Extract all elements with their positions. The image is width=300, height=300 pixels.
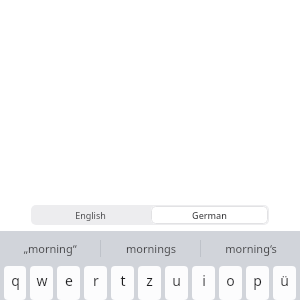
staticText: German <box>192 209 227 221</box>
button[interactable]: e <box>57 266 80 300</box>
staticText: ü <box>280 271 289 290</box>
staticText: o <box>226 271 235 290</box>
button[interactable]: w <box>30 266 53 300</box>
button[interactable]: mornings <box>101 231 200 266</box>
staticText: English <box>75 209 106 221</box>
staticText: i <box>202 271 206 290</box>
staticText: p <box>253 271 262 290</box>
button[interactable]: morning‘s <box>201 231 300 266</box>
button[interactable]: u <box>165 266 188 300</box>
button[interactable]: p <box>246 266 269 300</box>
staticText: t <box>120 271 126 290</box>
button[interactable]: English <box>31 205 150 225</box>
staticText: q <box>11 271 20 290</box>
button[interactable]: i <box>192 266 215 300</box>
button[interactable]: z <box>138 266 161 300</box>
button[interactable]: German <box>151 206 268 224</box>
staticText: z <box>146 271 153 290</box>
staticText: r <box>93 271 99 290</box>
staticText: u <box>172 271 181 290</box>
staticText: e <box>65 271 73 290</box>
staticText: w <box>36 271 48 290</box>
staticText: morning‘s <box>225 241 277 256</box>
button[interactable]: t <box>111 266 134 300</box>
button[interactable]: q <box>4 266 26 300</box>
button[interactable]: „morning“ <box>0 231 100 266</box>
staticText: mornings <box>126 241 176 256</box>
button[interactable]: ü <box>273 266 296 300</box>
staticText: „morning“ <box>23 241 77 256</box>
button[interactable]: r <box>84 266 107 300</box>
button[interactable]: o <box>219 266 242 300</box>
